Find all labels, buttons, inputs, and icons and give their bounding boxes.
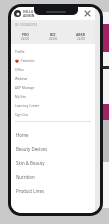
staticText: Skin & Beauty <box>16 160 45 166</box>
button[interactable]: Profile avatar <box>14 10 21 17</box>
staticText: Office <box>15 68 24 72</box>
staticText: Product Lines <box>16 188 45 194</box>
button[interactable]: BIZ <box>39 29 67 44</box>
staticText: ADP Manage <box>15 86 35 90</box>
button[interactable]: Close menu <box>83 9 92 18</box>
staticText: Profile <box>15 50 25 54</box>
button[interactable]: Beauty Devices <box>11 142 95 156</box>
staticText: HELLO <box>23 10 34 14</box>
button[interactable]: Webinar <box>11 74 95 83</box>
button[interactable]: Favorites <box>11 56 95 65</box>
button[interactable]: Office <box>11 65 95 74</box>
button[interactable]: ADP Manage <box>11 83 95 92</box>
staticText: Favorites <box>21 59 35 63</box>
staticText: My Site <box>15 95 26 99</box>
button[interactable]: Product Lines <box>11 184 95 198</box>
staticText: Nutrition <box>16 174 35 180</box>
button[interactable]: Learning Center <box>11 101 95 110</box>
button[interactable]: Skin & Beauty <box>11 156 95 170</box>
button[interactable]: My Site <box>11 92 95 101</box>
staticText: 22.00 <box>77 37 85 41</box>
button[interactable]: PRO <box>11 29 39 44</box>
staticText: 22.00 <box>49 37 57 41</box>
staticText: Learning Center <box>15 104 40 108</box>
staticText: BIZ <box>50 32 56 36</box>
staticText: Sign Out <box>15 113 28 117</box>
button[interactable]: Sign Out <box>11 110 95 119</box>
staticText: PRO <box>22 32 29 36</box>
button[interactable]: ABKD <box>67 29 95 44</box>
staticText: ADMIN <box>23 14 35 18</box>
button[interactable]: Profile <box>11 47 95 56</box>
staticText: 22.00 <box>21 37 29 41</box>
button[interactable]: Nutrition <box>11 170 95 184</box>
staticText: ID: 1002404793 <box>15 23 37 27</box>
staticText: Webinar <box>15 77 28 81</box>
staticText: Beauty Devices <box>16 146 48 152</box>
button[interactable]: Home <box>11 128 95 142</box>
staticText: ABKD <box>76 32 86 36</box>
staticText: Home <box>16 132 29 138</box>
